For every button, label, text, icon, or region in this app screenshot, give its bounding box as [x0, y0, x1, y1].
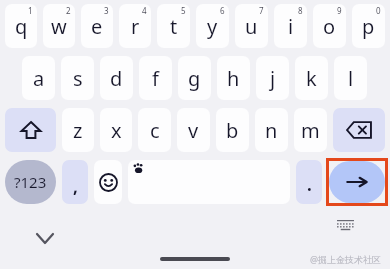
- button[interactable]: y: [196, 4, 229, 48]
- staticText: a: [33, 65, 45, 92]
- staticText: s: [73, 65, 83, 92]
- staticText: j: [270, 65, 276, 92]
- staticText: u: [245, 13, 258, 40]
- button[interactable]: e: [81, 4, 113, 48]
- staticText: 5: [181, 5, 186, 16]
- staticText: .: [307, 173, 312, 196]
- staticText: h: [227, 65, 240, 92]
- staticText: k: [306, 65, 317, 92]
- button[interactable]: p: [352, 4, 385, 48]
- button[interactable]: v: [177, 108, 210, 152]
- staticText: 6: [220, 5, 225, 16]
- staticText: w: [51, 13, 67, 40]
- staticText: m: [301, 117, 320, 144]
- staticText: @掘上金技术社区: [310, 253, 382, 265]
- button[interactable]: x: [100, 108, 132, 152]
- staticText: q: [15, 13, 28, 40]
- staticText: p: [362, 13, 375, 40]
- button[interactable]: k: [295, 56, 328, 100]
- button[interactable]: i: [274, 4, 307, 48]
- button[interactable]: b: [216, 108, 249, 152]
- button[interactable]: j: [256, 56, 289, 100]
- button[interactable]: t: [157, 4, 190, 48]
- staticText: d: [110, 65, 123, 92]
- button[interactable]: q: [5, 4, 37, 48]
- staticText: ,: [73, 175, 78, 198]
- staticText: 4: [142, 5, 147, 16]
- staticText: x: [111, 117, 122, 144]
- staticText: l: [348, 65, 354, 92]
- button[interactable]: Shift: [5, 108, 56, 152]
- button[interactable]: .: [296, 160, 322, 204]
- button[interactable]: ?123: [5, 160, 56, 204]
- button[interactable]: g: [178, 56, 211, 100]
- staticText: g: [188, 65, 201, 92]
- button[interactable]: Enter: [329, 161, 385, 203]
- button[interactable]: o: [313, 4, 346, 48]
- button[interactable]: Backspace: [333, 108, 385, 152]
- staticText: o: [323, 13, 336, 40]
- staticText: b: [226, 117, 239, 144]
- button[interactable]: Switch keyboard: [332, 212, 358, 238]
- staticText: 9: [337, 5, 342, 16]
- staticText: 3: [104, 5, 109, 16]
- staticText: 8: [298, 5, 303, 16]
- button[interactable]: Hide keyboard: [28, 221, 62, 255]
- button[interactable]: d: [100, 56, 133, 100]
- staticText: t: [170, 13, 178, 40]
- button[interactable]: a: [22, 56, 55, 100]
- button[interactable]: r: [119, 4, 151, 48]
- button[interactable]: ,: [62, 160, 88, 204]
- staticText: n: [265, 117, 278, 144]
- staticText: r: [131, 13, 140, 40]
- button[interactable]: n: [255, 108, 288, 152]
- button[interactable]: Space: [128, 160, 290, 204]
- staticText: y: [207, 13, 218, 40]
- button[interactable]: z: [62, 108, 94, 152]
- button[interactable]: Emoji: [94, 160, 122, 204]
- staticText: i: [288, 13, 294, 40]
- button[interactable]: m: [294, 108, 327, 152]
- staticText: c: [150, 117, 160, 144]
- button[interactable]: l: [334, 56, 367, 100]
- button[interactable]: u: [235, 4, 268, 48]
- button[interactable]: s: [61, 56, 94, 100]
- staticText: 0: [376, 5, 381, 16]
- staticText: 1: [28, 5, 33, 16]
- staticText: e: [91, 13, 103, 40]
- button[interactable]: w: [43, 4, 75, 48]
- staticText: 2: [66, 5, 71, 16]
- button[interactable]: c: [138, 108, 171, 152]
- staticText: f: [152, 65, 159, 92]
- staticText: z: [73, 117, 83, 144]
- staticText: ?123: [14, 172, 47, 192]
- staticText: v: [188, 117, 199, 144]
- button[interactable]: h: [217, 56, 250, 100]
- staticText: 7: [259, 5, 264, 16]
- button[interactable]: f: [139, 56, 172, 100]
